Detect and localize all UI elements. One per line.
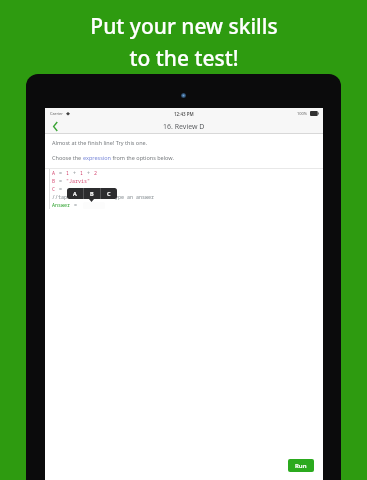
staticText: 1 [66, 170, 70, 177]
staticText: = [56, 170, 66, 177]
staticText: expression [83, 154, 111, 161]
staticText: from the options below. [111, 154, 174, 161]
button[interactable]: Run [288, 459, 314, 472]
staticText: to the test! [129, 44, 239, 73]
staticText: Almost at the finish line! Try this one. [52, 139, 148, 146]
staticText: Carrier [50, 111, 64, 116]
staticText: = [56, 178, 66, 185]
staticText: B [52, 178, 56, 185]
staticText: 100% [297, 111, 308, 116]
staticText: 2 [94, 170, 98, 177]
staticText: = [56, 186, 66, 193]
button[interactable]: C [101, 188, 117, 199]
staticText: Put your new skills [90, 12, 278, 41]
staticText: "Jarvis" [66, 178, 91, 185]
staticText: C [52, 186, 56, 193]
staticText: A [52, 170, 56, 177]
button[interactable]: A [67, 188, 83, 199]
staticText: + [84, 170, 94, 177]
staticText: C [107, 190, 111, 197]
staticText: 16. Review D [163, 122, 205, 132]
staticText: 12:43 PM [174, 111, 194, 117]
button[interactable]: Back [45, 119, 65, 134]
staticText: + [70, 170, 80, 177]
staticText: //tap the button to type an answer [52, 194, 155, 201]
staticText: A [73, 190, 77, 197]
staticText: Run [295, 462, 307, 470]
staticText: Answer [52, 202, 71, 209]
staticText: 1 [80, 170, 84, 177]
staticText: Choose the [52, 154, 83, 161]
staticText: = [71, 202, 81, 209]
button[interactable]: B [84, 188, 100, 199]
staticText: B [90, 190, 94, 197]
